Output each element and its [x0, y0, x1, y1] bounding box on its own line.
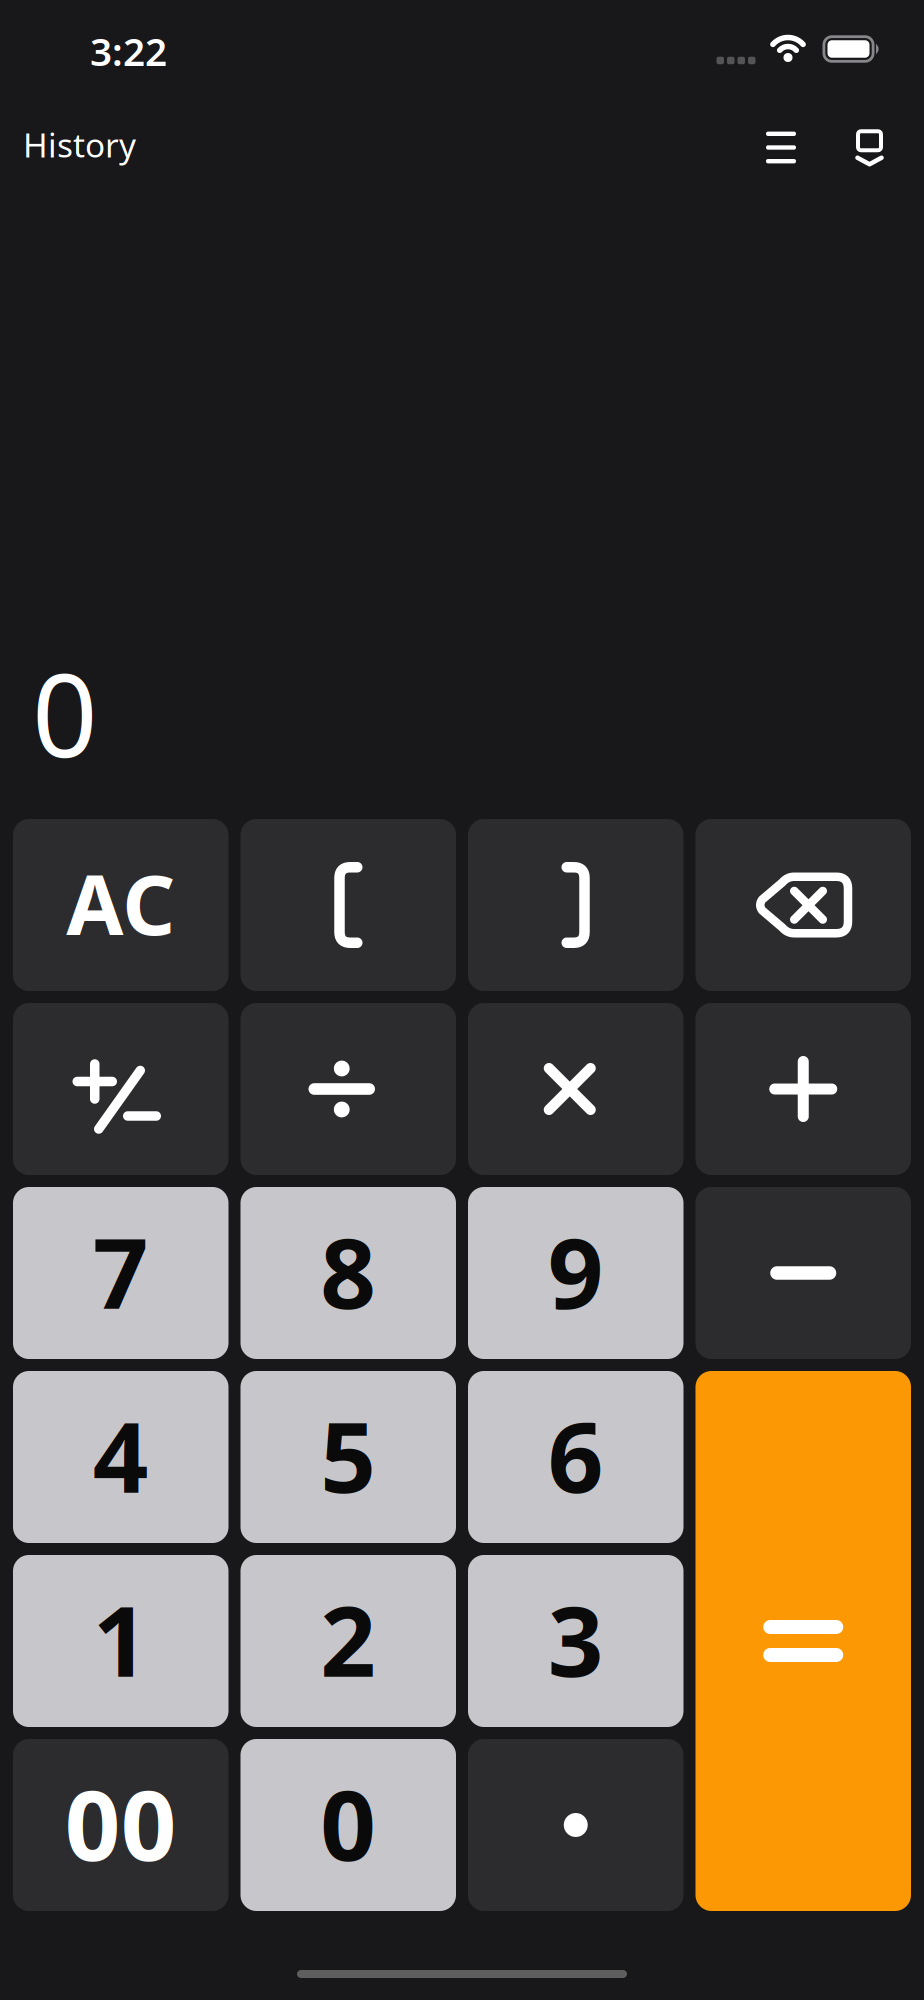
staticText: 6	[548, 1390, 604, 1520]
staticText: 4	[93, 1390, 149, 1520]
button[interactable]: 2	[240, 1555, 456, 1727]
staticText: 0	[320, 1758, 376, 1888]
staticText: AC	[66, 848, 175, 958]
staticText: History	[23, 122, 136, 167]
button[interactable]: Equals	[695, 1371, 911, 1911]
button[interactable]: Decimal point	[468, 1739, 683, 1911]
button[interactable]: Hide keypad	[856, 129, 883, 166]
button[interactable]: Menu	[766, 132, 796, 163]
button[interactable]: Subtract	[695, 1187, 911, 1359]
button[interactable]: Delete	[695, 819, 911, 991]
button[interactable]: 0	[240, 1739, 456, 1911]
button[interactable]: Plus minus	[13, 1003, 228, 1175]
button[interactable]: 8	[240, 1187, 456, 1359]
staticText: 7	[93, 1206, 149, 1336]
button[interactable]: 7	[13, 1187, 228, 1359]
button[interactable]: 4	[13, 1371, 228, 1543]
staticText: 1	[93, 1574, 149, 1704]
staticText: 9	[548, 1206, 604, 1336]
staticText: 2	[320, 1574, 376, 1704]
staticText: 8	[320, 1206, 376, 1336]
button[interactable]: 6	[468, 1371, 683, 1543]
button[interactable]: Divide	[240, 1003, 456, 1175]
button[interactable]: 3	[468, 1555, 683, 1727]
button[interactable]: 1	[13, 1555, 228, 1727]
button[interactable]: Close parenthesis	[468, 819, 683, 991]
button[interactable]: Add	[695, 1003, 911, 1175]
button[interactable]: Open parenthesis	[240, 819, 456, 991]
staticText: 3:22	[90, 25, 167, 77]
staticText: 5	[320, 1390, 376, 1520]
staticText: 3	[548, 1574, 604, 1704]
button[interactable]: History	[27, 125, 140, 170]
button[interactable]: AC	[13, 819, 228, 991]
staticText: 00	[65, 1758, 177, 1888]
button[interactable]: 9	[468, 1187, 683, 1359]
button[interactable]: Multiply	[468, 1003, 683, 1175]
button[interactable]: 00	[13, 1739, 228, 1911]
staticText: 0	[32, 637, 98, 789]
button[interactable]: 5	[240, 1371, 456, 1543]
